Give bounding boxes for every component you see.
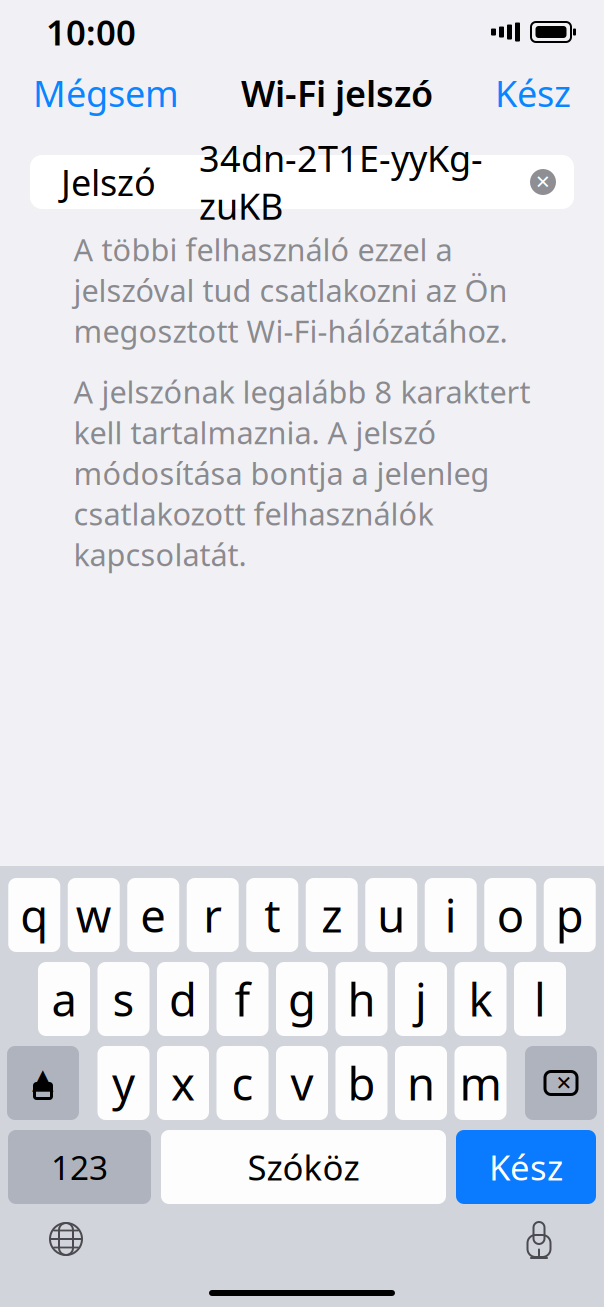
staticText: f bbox=[234, 969, 250, 1029]
staticText: c bbox=[231, 1053, 253, 1113]
staticText: 10:00 bbox=[46, 9, 136, 55]
staticText: A többi felhasználó ezzel a jelszóval tu… bbox=[73, 229, 507, 351]
staticText: 123 bbox=[51, 1145, 108, 1189]
button[interactable]: Kész bbox=[495, 69, 571, 117]
button[interactable]: Mégsem bbox=[33, 69, 179, 117]
staticText: w bbox=[76, 885, 112, 945]
button[interactable]: b bbox=[335, 1046, 387, 1120]
button[interactable]: j bbox=[395, 962, 447, 1036]
button[interactable]: Delete bbox=[525, 1046, 597, 1120]
button[interactable]: i bbox=[425, 878, 477, 952]
staticText: b bbox=[347, 1053, 375, 1113]
button[interactable]: x bbox=[157, 1046, 209, 1120]
staticText: q bbox=[20, 885, 48, 945]
staticText: Szóköz bbox=[247, 1144, 359, 1190]
staticText: d bbox=[169, 969, 197, 1029]
staticText: u bbox=[377, 885, 405, 945]
staticText: j bbox=[415, 969, 427, 1029]
button[interactable]: p bbox=[544, 878, 596, 952]
button[interactable]: m bbox=[454, 1046, 506, 1120]
staticText: g bbox=[288, 969, 316, 1029]
button[interactable]: k bbox=[454, 962, 506, 1036]
button[interactable]: d bbox=[157, 962, 209, 1036]
staticText: h bbox=[347, 969, 375, 1029]
staticText: Kész bbox=[495, 69, 571, 117]
staticText: Wi-Fi jelszó bbox=[241, 69, 433, 117]
staticText: ✕ bbox=[555, 1072, 572, 1094]
button[interactable]: Clear text bbox=[518, 155, 568, 209]
button[interactable]: o bbox=[484, 878, 536, 952]
staticText: Mégsem bbox=[33, 69, 179, 117]
staticText: z bbox=[321, 885, 342, 945]
staticText: t bbox=[264, 885, 280, 945]
button[interactable]: Kész bbox=[456, 1130, 596, 1204]
staticText: ✕ bbox=[535, 171, 551, 193]
button[interactable]: c bbox=[216, 1046, 268, 1120]
staticText: Jelszó bbox=[61, 158, 156, 206]
staticText: ▲ bbox=[32, 1063, 54, 1094]
button[interactable]: Shift bbox=[7, 1046, 79, 1120]
staticText: Kész bbox=[489, 1144, 563, 1190]
button[interactable]: Szóköz bbox=[161, 1130, 446, 1204]
staticText: n bbox=[407, 1053, 435, 1113]
button[interactable]: n bbox=[395, 1046, 447, 1120]
button[interactable]: r bbox=[187, 878, 239, 952]
button[interactable]: a bbox=[38, 962, 90, 1036]
staticText: e bbox=[140, 885, 166, 945]
button[interactable]: g bbox=[276, 962, 328, 1036]
staticText: x bbox=[171, 1053, 195, 1113]
button[interactable]: Next keyboard bbox=[47, 1220, 85, 1258]
button[interactable]: Dictate bbox=[521, 1218, 557, 1260]
button[interactable]: y bbox=[97, 1046, 149, 1120]
staticText: v bbox=[290, 1053, 313, 1113]
staticText: y bbox=[112, 1053, 135, 1113]
button[interactable]: e bbox=[127, 878, 179, 952]
staticText: m bbox=[459, 1053, 501, 1113]
button[interactable]: s bbox=[97, 962, 149, 1036]
button[interactable]: t bbox=[246, 878, 298, 952]
staticText: p bbox=[556, 885, 584, 945]
staticText: 34dn-2T1E-yyKg-zuKB bbox=[199, 134, 483, 230]
button[interactable]: 123 bbox=[8, 1130, 151, 1204]
button[interactable]: w bbox=[68, 878, 120, 952]
button[interactable]: h bbox=[335, 962, 387, 1036]
staticText: A jelszónak legalább 8 karaktert kell ta… bbox=[73, 371, 530, 575]
staticText: o bbox=[497, 885, 524, 945]
button[interactable]: u bbox=[365, 878, 417, 952]
staticText: a bbox=[51, 969, 76, 1029]
staticText: s bbox=[112, 969, 134, 1029]
staticText: l bbox=[534, 969, 546, 1029]
button[interactable]: z bbox=[306, 878, 358, 952]
button[interactable]: f bbox=[216, 962, 268, 1036]
button[interactable]: l bbox=[514, 962, 566, 1036]
button[interactable]: v bbox=[276, 1046, 328, 1120]
button[interactable]: q bbox=[8, 878, 60, 952]
staticText: i bbox=[445, 885, 457, 945]
staticText: k bbox=[468, 969, 492, 1029]
staticText: r bbox=[203, 885, 222, 945]
